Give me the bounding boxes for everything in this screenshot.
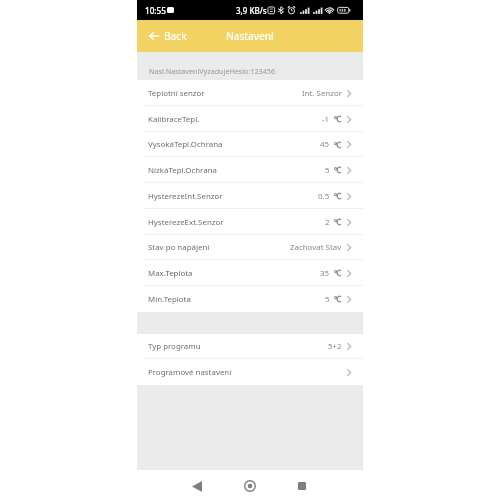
staticText: HysterezeExt.Senzor	[148, 217, 224, 228]
staticText: 5	[325, 165, 330, 176]
button[interactable]: Home	[237, 473, 263, 499]
staticText: 3,9 KB/s	[236, 5, 267, 16]
staticText: 0.5	[318, 191, 330, 202]
button[interactable]: Back	[184, 473, 210, 499]
button[interactable]: Programové nastavení	[137, 359, 363, 385]
staticText: Zachovat Stav	[290, 242, 342, 253]
button[interactable]: Back	[137, 20, 195, 52]
button[interactable]: Typ programu	[137, 334, 363, 359]
staticText: 10:55	[145, 5, 166, 16]
staticText: 5	[325, 294, 330, 305]
staticText: -1	[322, 114, 330, 125]
staticText: 5+2	[328, 341, 342, 352]
staticText: HysterezeInt.Senzor	[148, 191, 223, 202]
button[interactable]: Recents	[289, 473, 315, 499]
button[interactable]: NízkáTepl.Ochrana	[137, 157, 363, 183]
button[interactable]: VysokáTepl.Ochrana	[137, 132, 363, 157]
button[interactable]: KalibraceTepl.	[137, 106, 363, 132]
staticText: 45	[320, 139, 330, 150]
staticText: KalibraceTepl.	[148, 114, 200, 125]
staticText: VysokáTepl.Ochrana	[148, 139, 223, 150]
button[interactable]: Teplotní senzor	[137, 80, 363, 106]
staticText: Min.Teplota	[148, 294, 191, 305]
staticText: Max.Teplota	[148, 268, 193, 279]
staticText: Stav po napájení	[148, 242, 210, 253]
staticText: Teplotní senzor	[148, 88, 205, 99]
staticText: NízkáTepl.Ochrana	[148, 165, 217, 176]
staticText: Nasl.NastaveniVyzadujeHeslo:123456	[149, 66, 276, 76]
button[interactable]: Stav po napájení	[137, 235, 363, 260]
button[interactable]: HysterezeExt.Senzor	[137, 209, 363, 235]
staticText: Int. Senzor	[302, 88, 342, 99]
button[interactable]: Min.Teplota	[137, 286, 363, 312]
button[interactable]: HysterezeInt.Senzor	[137, 183, 363, 209]
staticText: Nastavení	[226, 29, 274, 43]
staticText: 2	[325, 217, 330, 228]
staticText: Programové nastavení	[148, 367, 232, 378]
staticText: Typ programu	[148, 341, 201, 352]
staticText: 35	[320, 268, 330, 279]
staticText: Back	[164, 29, 187, 43]
button[interactable]: Max.Teplota	[137, 260, 363, 286]
